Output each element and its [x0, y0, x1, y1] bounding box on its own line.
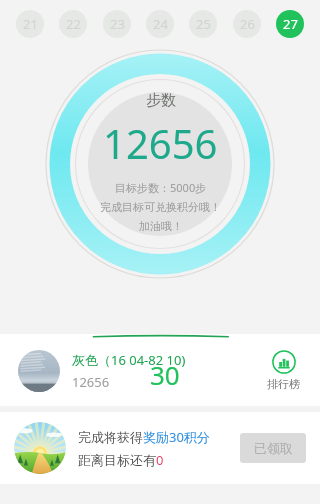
staticText: 25: [196, 15, 211, 33]
staticText: 完成将获得奖励30积分: [78, 428, 210, 446]
button[interactable]: 22: [59, 10, 87, 38]
button[interactable]: 23: [103, 10, 131, 38]
staticText: 加油哦！: [139, 219, 183, 233]
staticText: 排行榜: [267, 377, 300, 391]
button[interactable]: 21: [16, 10, 44, 38]
staticText: 步数: [146, 91, 176, 110]
staticText: 已领取: [254, 440, 293, 456]
staticText: 12656: [72, 373, 110, 391]
staticText: 27: [283, 15, 298, 33]
staticText: 目标步数：5000步: [115, 180, 207, 195]
staticText: 21: [23, 15, 38, 33]
button[interactable]: 24: [146, 10, 174, 38]
staticText: 灰色（16 04-82 10): [72, 351, 186, 369]
staticText: 24: [153, 15, 168, 33]
button[interactable]: 步数: [44, 48, 276, 280]
button[interactable]: 完成将获得奖励30积分: [0, 412, 320, 484]
button[interactable]: 排行榜: [263, 348, 304, 393]
staticText: 22: [66, 15, 81, 33]
button[interactable]: 25: [189, 10, 217, 38]
button[interactable]: 27: [276, 10, 304, 38]
staticText: 完成目标可兑换积分哦！: [100, 200, 221, 214]
button[interactable]: User avatar: [18, 350, 60, 392]
button[interactable]: 已领取: [240, 433, 306, 463]
button[interactable]: 26: [233, 10, 261, 38]
staticText: 12656: [103, 116, 218, 170]
staticText: 23: [110, 15, 125, 33]
staticText: 距离目标还有0: [78, 451, 164, 469]
staticText: 26: [240, 15, 255, 33]
staticText: 30: [150, 357, 180, 392]
